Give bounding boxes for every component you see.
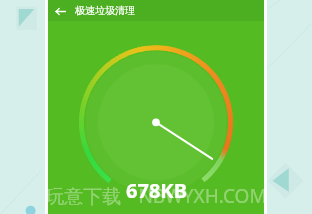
- staticText: 玩意下载 • NBWYXH.COM: [45, 183, 267, 209]
- button[interactable]: Back: [52, 3, 68, 19]
- staticText: 极速垃圾清理: [75, 4, 135, 17]
- staticText: 678KB: [126, 177, 187, 204]
